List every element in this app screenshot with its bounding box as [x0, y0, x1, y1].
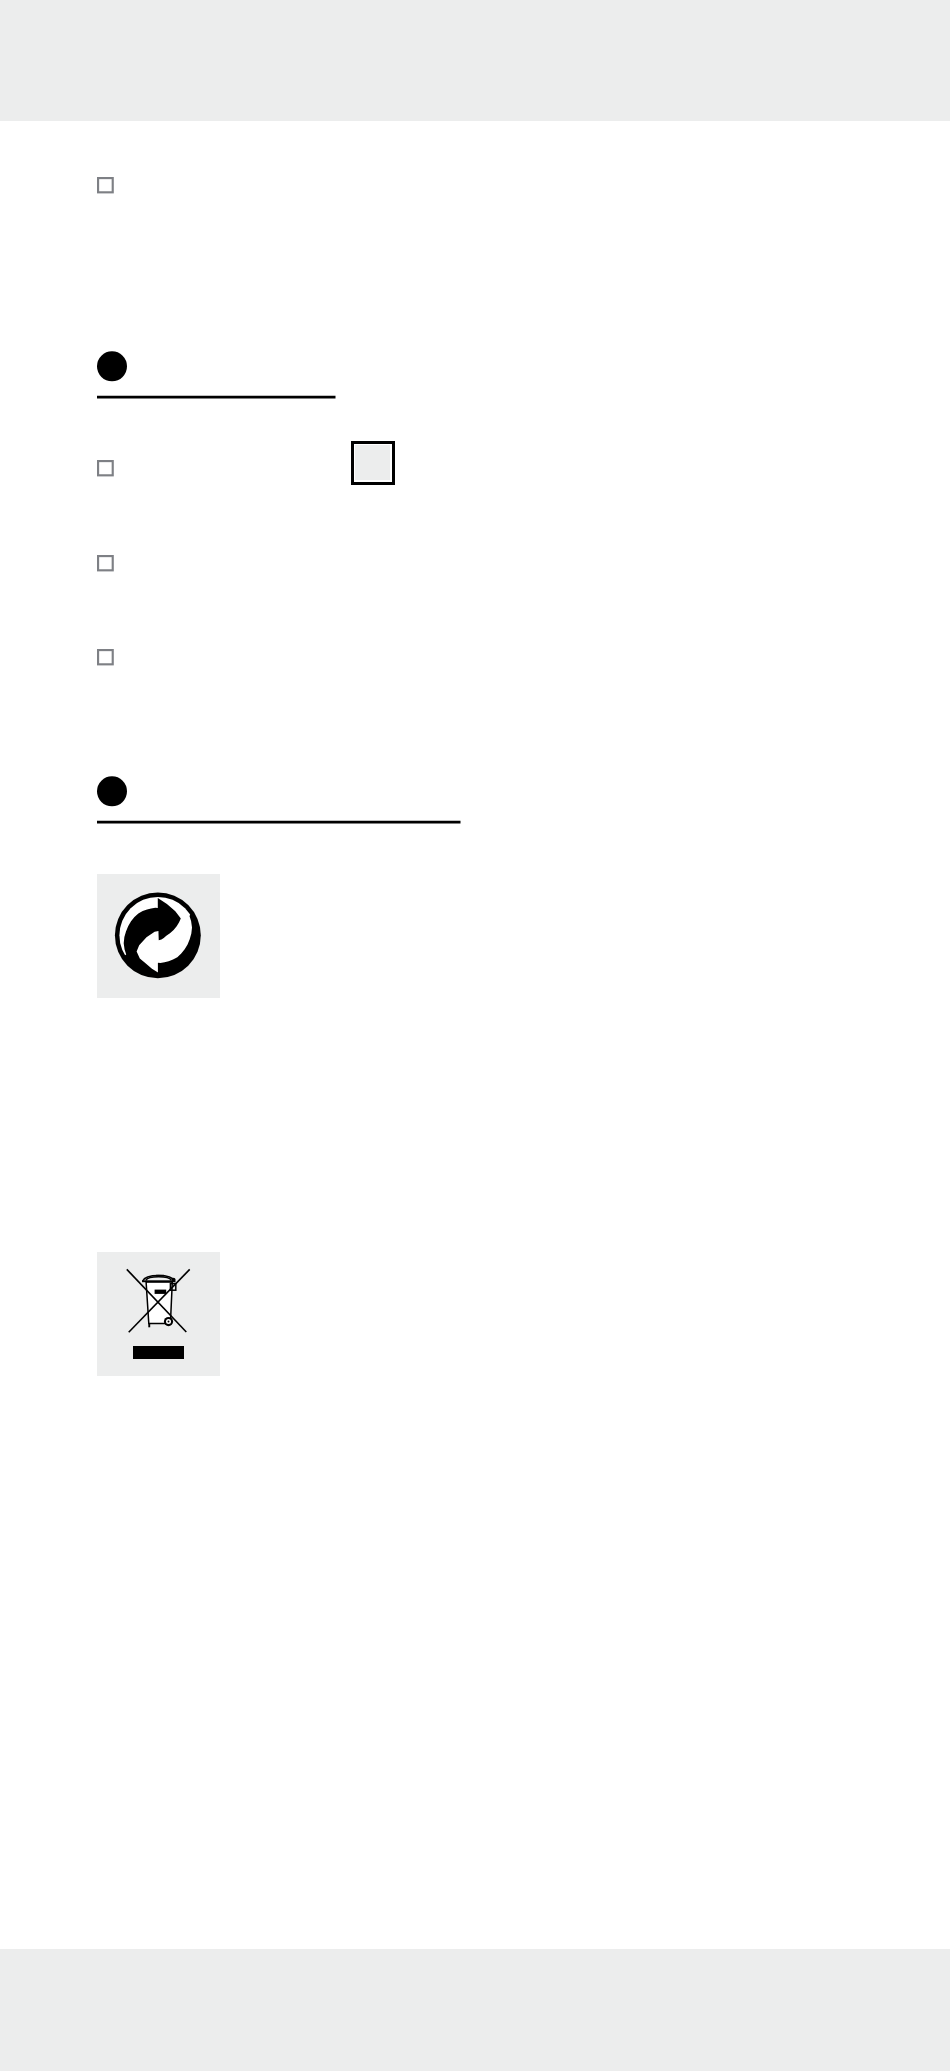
button[interactable]: Der Grüne Punkt recycling mark	[97, 874, 220, 998]
button[interactable]: Section heading	[97, 351, 340, 402]
button[interactable]: Section heading	[97, 776, 465, 827]
button[interactable]	[97, 649, 950, 665]
button[interactable]	[97, 177, 950, 193]
button[interactable]: WEEE: do not dispose of with household w…	[97, 1252, 220, 1376]
button[interactable]	[97, 460, 950, 524]
button[interactable]	[97, 555, 950, 571]
